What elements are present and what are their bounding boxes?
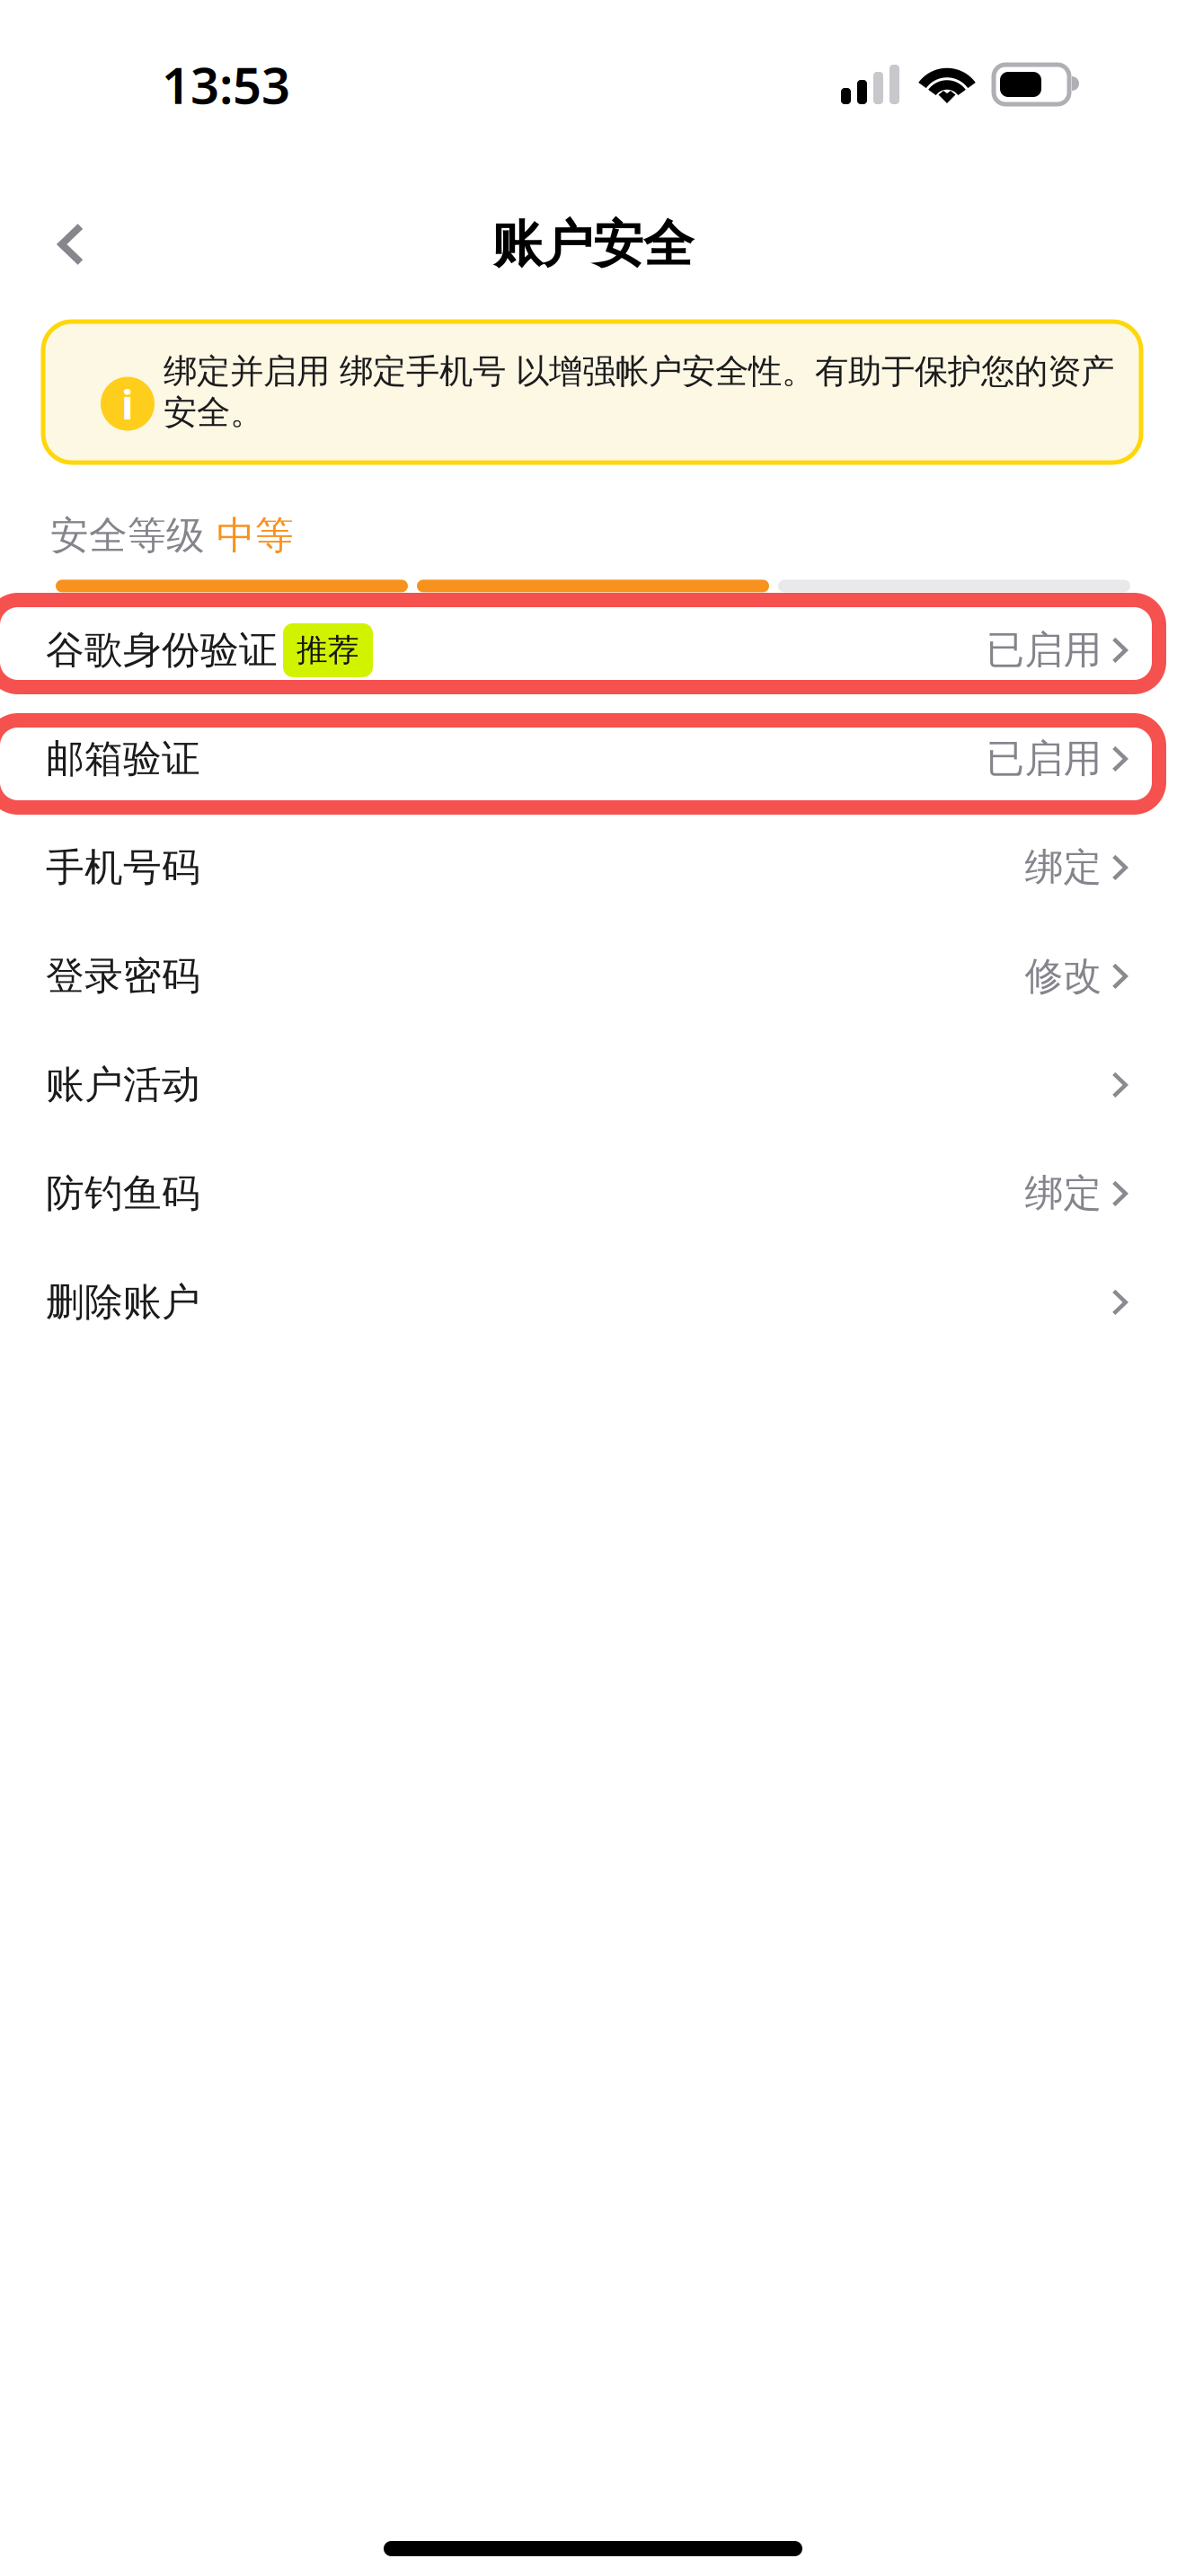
button[interactable]: 邮箱验证 — [0, 705, 1186, 813]
staticText: 修改 — [1025, 953, 1102, 1000]
staticText: 已启用 — [986, 735, 1102, 782]
staticText: 账户安全 — [492, 213, 694, 275]
staticText: 登录密码 — [46, 953, 200, 1000]
staticText: 13:53 — [162, 51, 290, 118]
staticText: 已启用 — [986, 627, 1102, 674]
staticText: 推荐 — [296, 631, 359, 669]
staticText: 中等 — [217, 512, 294, 559]
button[interactable]: Back — [32, 206, 110, 283]
staticText: 防钓鱼码 — [46, 1170, 200, 1217]
staticText: i — [121, 377, 134, 431]
button[interactable]: 谷歌身份验证 — [0, 596, 1186, 705]
button[interactable]: 账户活动 — [0, 1031, 1186, 1139]
staticText: 删除账户 — [46, 1279, 200, 1326]
staticText: 安全等级 — [50, 512, 217, 559]
button[interactable]: 手机号码 — [0, 813, 1186, 922]
button[interactable]: 删除账户 — [0, 1248, 1186, 1357]
staticText: 绑定并启用 绑定手机号 以增强帐户安全性。有助于保护您的资产安全。 — [164, 351, 1114, 433]
staticText: 绑定 — [1025, 844, 1102, 891]
staticText: 绑定 — [1025, 1170, 1102, 1217]
staticText: 谷歌身份验证 — [46, 627, 278, 674]
staticText: 手机号码 — [46, 844, 200, 891]
staticText: 邮箱验证 — [46, 735, 200, 782]
button[interactable]: 防钓鱼码 — [0, 1139, 1186, 1248]
button[interactable]: 登录密码 — [0, 922, 1186, 1031]
staticText: 账户活动 — [46, 1061, 200, 1108]
